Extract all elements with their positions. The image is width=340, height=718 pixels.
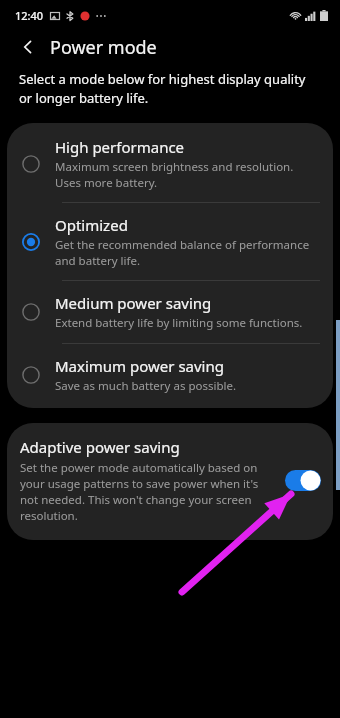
- staticText: 12:40: [15, 8, 44, 23]
- staticText: High performance: [55, 137, 185, 157]
- staticText: Optimized: [55, 215, 128, 235]
- button[interactable]: Optimized: [7, 203, 333, 280]
- staticText: Select a mode below for highest display …: [19, 70, 321, 107]
- staticText: Save as much battery as possible.: [55, 378, 236, 394]
- staticText: Set the power mode automatically based o…: [20, 460, 279, 524]
- staticText: Maximum screen brightness and resolution…: [55, 159, 319, 190]
- button[interactable]: Adaptive power saving toggle: [285, 470, 321, 491]
- button[interactable]: Adaptive power saving: [7, 423, 333, 540]
- staticText: Get the recommended balance of performan…: [55, 237, 319, 268]
- staticText: Medium power saving: [55, 293, 212, 313]
- button[interactable]: Maximum power saving: [7, 344, 333, 406]
- button[interactable]: Back: [14, 33, 42, 61]
- button[interactable]: Medium power saving: [7, 281, 333, 343]
- staticText: Maximum power saving: [55, 356, 224, 376]
- button[interactable]: High performance: [7, 125, 333, 202]
- staticText: Power mode: [50, 35, 157, 60]
- staticText: Extend battery life by limiting some fun…: [55, 315, 303, 331]
- staticText: Adaptive power saving: [20, 437, 180, 457]
